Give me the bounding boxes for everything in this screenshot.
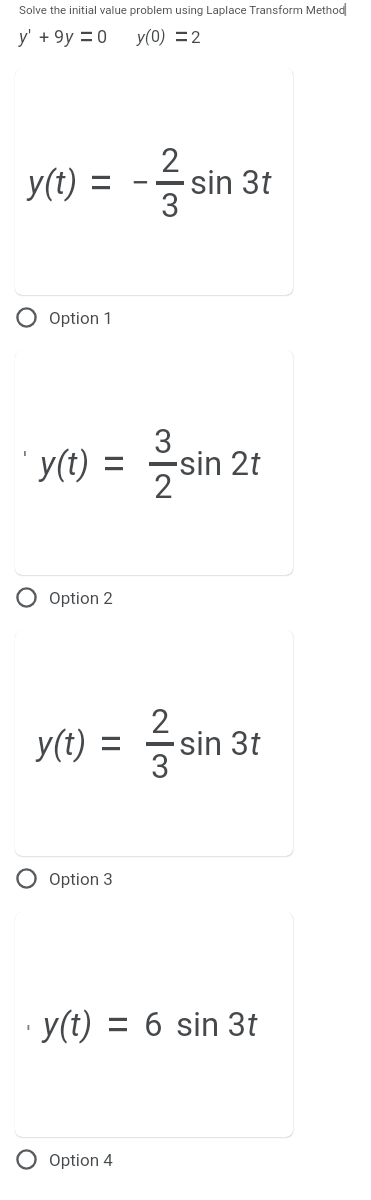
staticText: '	[28, 26, 32, 47]
staticText: 3	[151, 747, 170, 786]
staticText: t	[250, 444, 261, 483]
staticText: (	[44, 163, 55, 202]
staticText: 9	[54, 26, 65, 47]
staticText: (	[145, 27, 151, 46]
staticText: −	[131, 163, 150, 202]
staticText: 6	[144, 1005, 163, 1044]
staticText: t	[70, 1005, 81, 1044]
staticText: 3	[161, 186, 180, 225]
staticText: sin 2	[179, 444, 250, 483]
staticText: y	[37, 724, 53, 763]
staticText: +	[39, 26, 50, 47]
staticText: Option 2	[49, 588, 113, 608]
staticText: 2	[161, 141, 180, 180]
staticText: (	[53, 724, 64, 763]
staticText: t	[67, 444, 78, 483]
staticText: y	[40, 444, 56, 483]
button[interactable]: Option 1	[0, 295, 371, 350]
staticText: y	[28, 163, 44, 202]
staticText: 3	[154, 422, 173, 461]
staticText: Option 1	[49, 308, 113, 328]
button[interactable]: Option 3	[0, 856, 371, 912]
staticText: sin 3	[190, 163, 261, 202]
button[interactable]: y	[15, 912, 293, 1137]
staticText: t	[250, 724, 261, 763]
staticText: 2	[154, 467, 173, 506]
staticText: (	[56, 444, 67, 483]
staticText: y	[43, 1005, 59, 1044]
staticText: y	[137, 27, 145, 47]
staticText: t	[261, 163, 272, 202]
button[interactable]: y	[15, 68, 293, 295]
staticText: 2	[151, 702, 170, 741]
staticText: 0	[97, 26, 108, 47]
staticText: Solve the initial value problem using La…	[19, 3, 346, 17]
staticText: Option 3	[49, 869, 113, 889]
staticText: (	[59, 1005, 70, 1044]
staticText: t	[55, 163, 66, 202]
staticText: 2	[191, 27, 201, 47]
button[interactable]: y	[15, 350, 293, 575]
button[interactable]: Option 2	[0, 575, 371, 630]
staticText: )	[81, 1005, 93, 1044]
staticText: )	[160, 27, 166, 46]
staticText: )	[66, 163, 78, 202]
staticText: Option 4	[49, 1150, 113, 1170]
staticText: y	[65, 26, 74, 47]
staticText: )	[75, 724, 87, 763]
button[interactable]: y	[15, 630, 293, 856]
staticText: t	[64, 724, 75, 763]
button[interactable]: Option 4	[0, 1137, 371, 1200]
staticText: sin 3	[179, 724, 250, 763]
staticText: )	[78, 444, 90, 483]
staticText: 0	[151, 27, 160, 46]
staticText: y	[19, 26, 28, 47]
staticText: sin 3	[176, 1005, 247, 1044]
staticText: t	[247, 1005, 258, 1044]
